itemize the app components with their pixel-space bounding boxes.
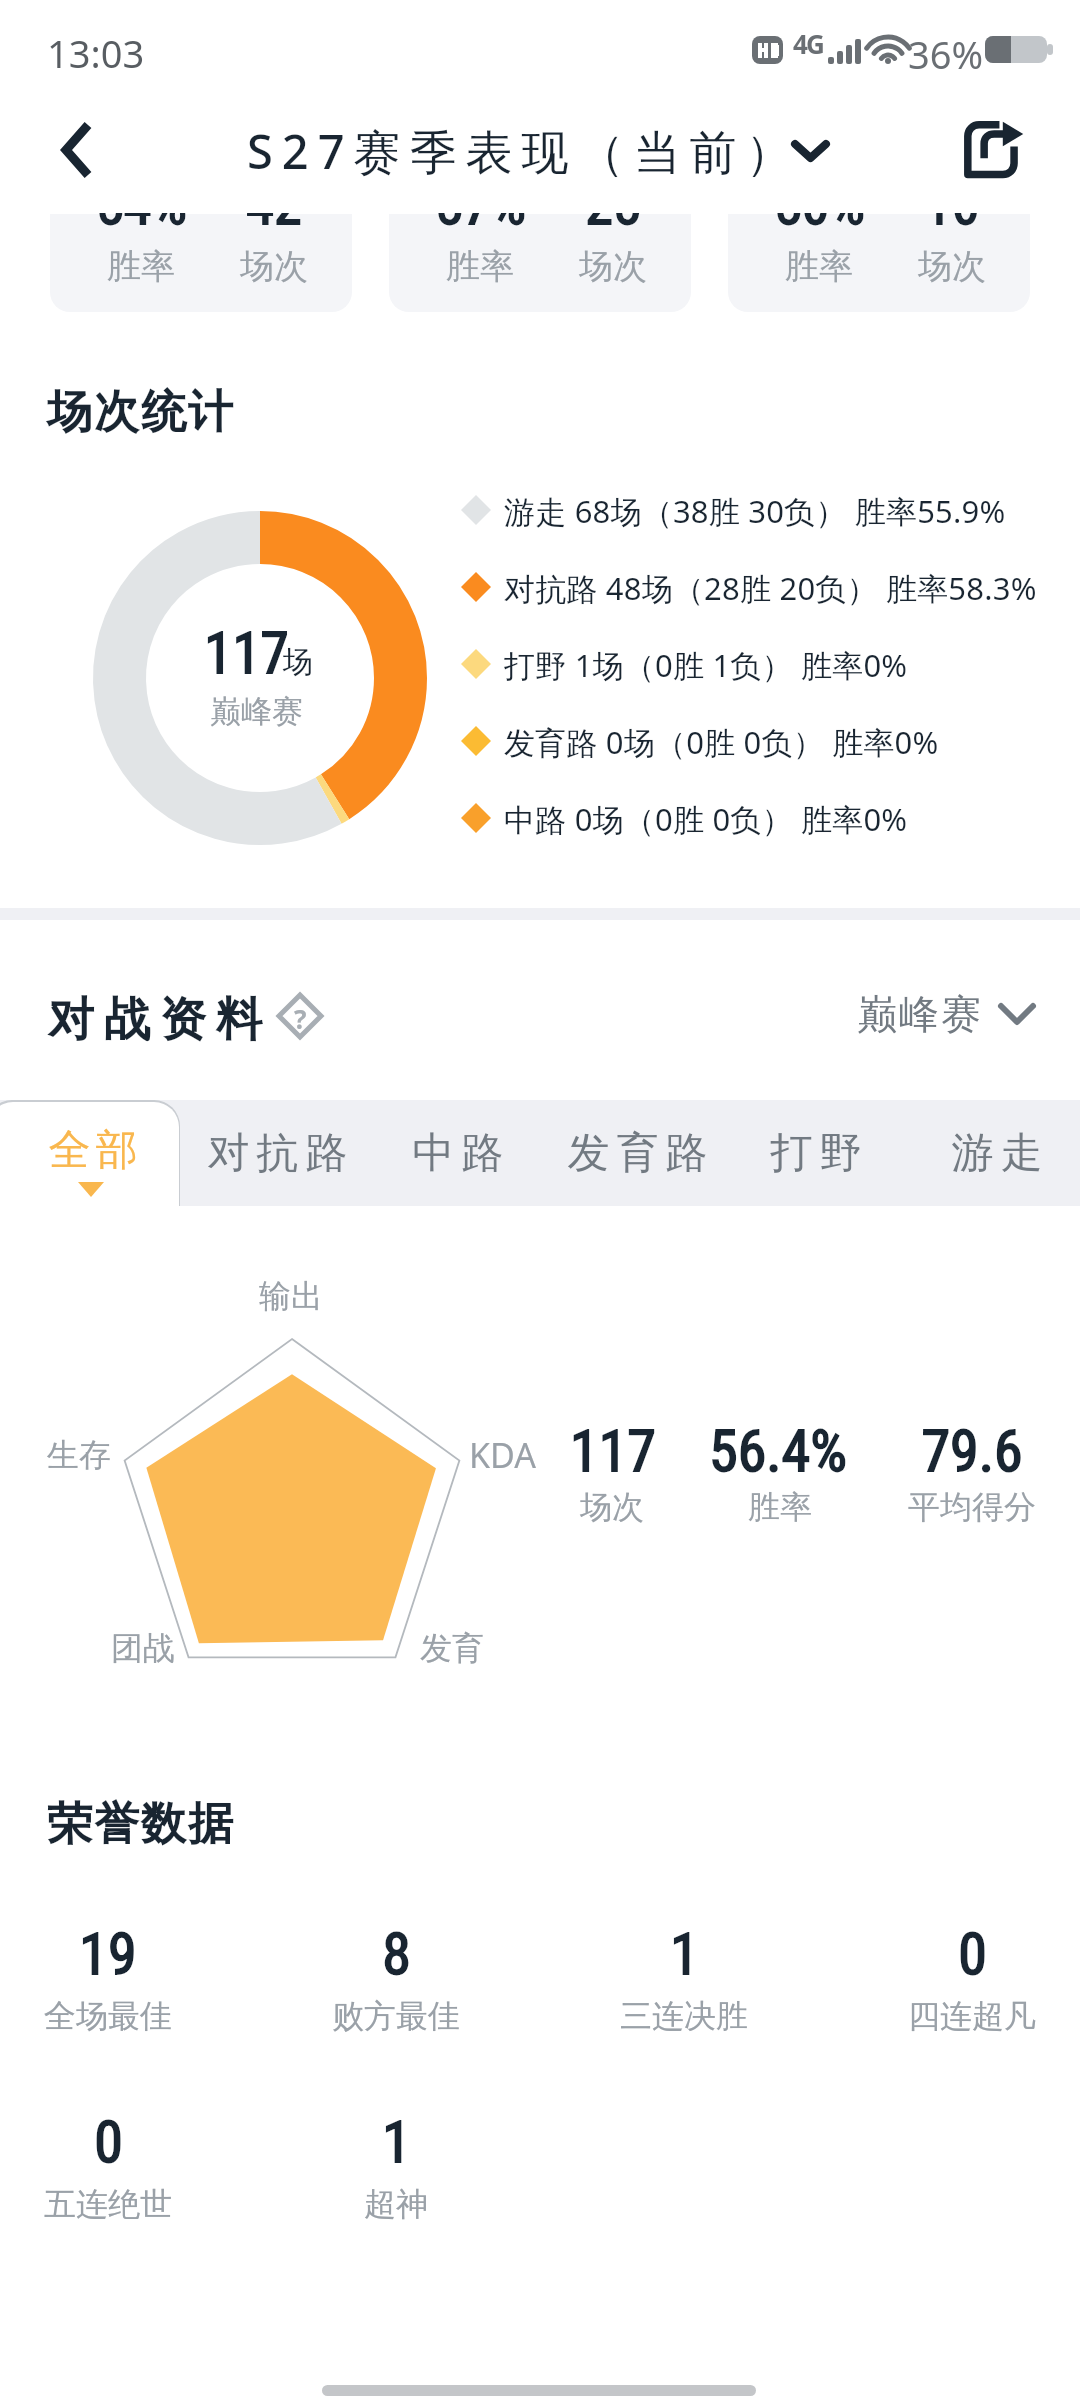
staticText: 117 [204,620,289,687]
staticText: 场次 [579,245,647,288]
button[interactable] [0,1100,180,1206]
staticText: 场次统计 [46,384,234,441]
staticText: 117 [570,1417,656,1485]
staticText: 42 [246,172,302,238]
staticText: ? [294,1001,307,1031]
staticText: 场次 [580,1487,644,1527]
staticText: S27赛季表现（当前） [247,119,802,183]
staticText: 0 [958,1920,987,1988]
staticText: 打野 [767,1127,865,1180]
staticText: 57% [435,172,526,238]
staticText: 胜率 [446,245,514,288]
staticText: 8 [382,1920,411,1988]
button[interactable]: 巅峰赛 [856,985,1036,1043]
staticText: 超神 [364,2184,428,2224]
button[interactable]: Back [26,106,128,194]
staticText: 50% [774,172,865,238]
staticText: KDA [469,1432,536,1478]
button[interactable] [389,214,691,312]
button[interactable]: Share [944,100,1044,200]
button[interactable]: 游走 [902,1100,1080,1206]
button[interactable]: 对抗路 [182,1100,372,1206]
staticText: 54% [96,172,187,238]
staticText: 对抗路 48场（28胜 20负） 胜率58.3% [504,567,1037,609]
staticText: 打野 1场（0胜 1负） 胜率0% [504,644,908,686]
staticText: 发育路 0场（0胜 0负） 胜率0% [504,721,939,763]
staticText: 三连决胜 [620,1996,748,2036]
staticText: 中路 0场（0胜 0负） 胜率0% [504,798,908,840]
button[interactable]: 发育路 [542,1100,732,1206]
staticText: 发育路 [564,1127,711,1180]
staticText: 中路 [409,1127,507,1180]
staticText: 1 [670,1920,699,1988]
button[interactable]: 打野 [721,1100,911,1206]
staticText: 0 [94,2108,123,2176]
staticText: 13:03 [47,27,145,79]
staticText: 全场最佳 [44,1996,172,2036]
staticText: 团战 [111,1628,175,1668]
button[interactable]: 中路 [363,1100,553,1206]
staticText: 输出 [259,1276,323,1316]
staticText: 五连绝世 [44,2184,172,2224]
staticText: 巅峰赛 [210,692,303,731]
staticText: 79.6 [921,1417,1023,1485]
staticText: 对战资料 [43,991,267,1049]
button[interactable] [50,214,352,312]
staticText: 巅峰赛 [856,989,982,1039]
staticText: 场 [283,643,313,681]
staticText: 56.4% [709,1417,847,1485]
staticText: 四连超凡 [908,1996,1036,2036]
staticText: 全部 [46,1124,140,1177]
button[interactable] [728,214,1030,312]
staticText: 4 [793,26,808,61]
staticText: 场次 [240,245,308,288]
staticText: 胜率 [107,245,175,288]
staticText: G [806,26,825,61]
staticText: 荣誉数据 [46,1796,234,1853]
staticText: 1 [382,2108,411,2176]
staticText: 败方最佳 [332,1996,460,2036]
staticText: 36% [908,28,984,80]
staticText: 场次 [918,245,986,288]
staticText: 10 [924,172,980,238]
staticText: 游走 [948,1127,1046,1180]
staticText: 发育 [420,1628,484,1668]
staticText: 生存 [47,1435,111,1475]
staticText: 对抗路 [204,1127,351,1180]
staticText: 游走 68场（38胜 30负） 胜率55.9% [504,490,1006,532]
staticText: 胜率 [785,245,853,288]
staticText: 19 [79,1920,137,1988]
staticText: 平均得分 [908,1487,1036,1527]
staticText: 25 [585,172,641,238]
button[interactable]: S27赛季表现（当前） [240,112,840,194]
staticText: 胜率 [748,1487,812,1527]
